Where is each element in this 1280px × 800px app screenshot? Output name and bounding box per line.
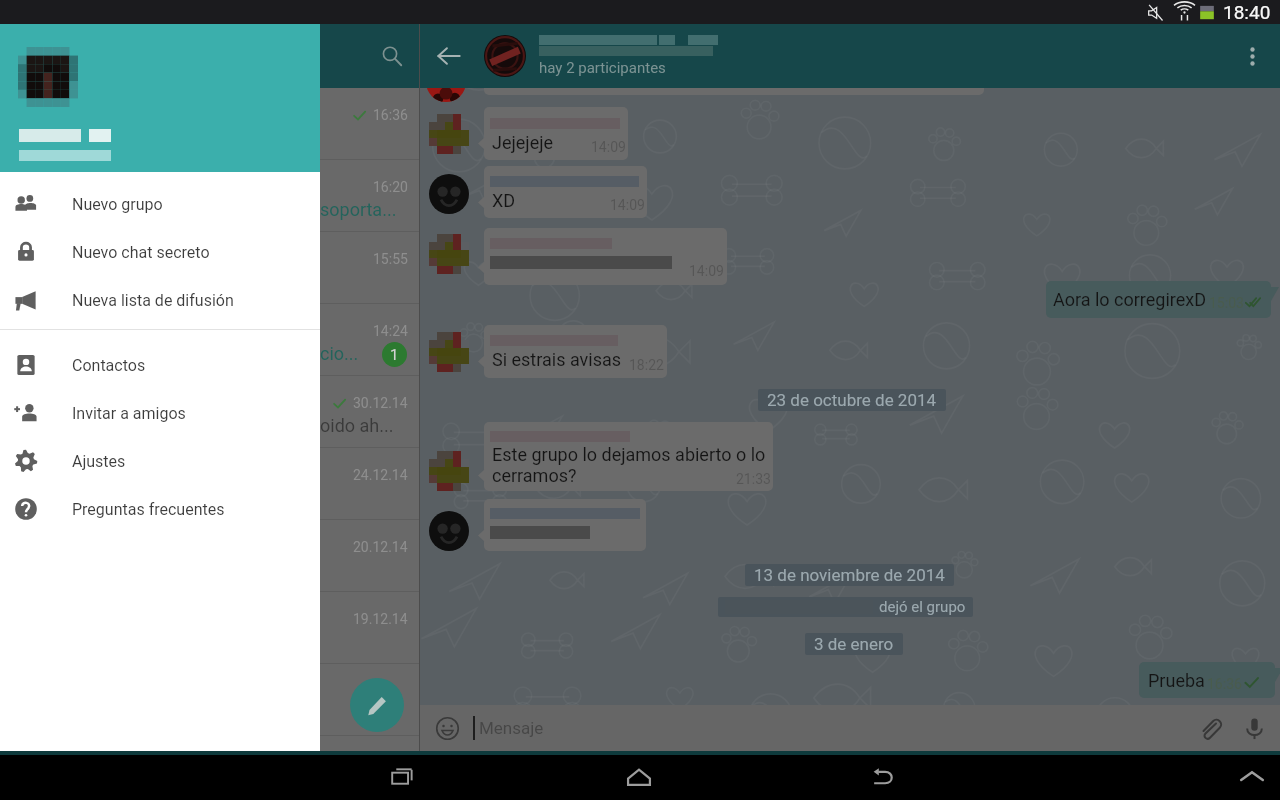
staticText: 18:40 bbox=[1223, 1, 1271, 23]
button[interactable]: Emoji bbox=[427, 708, 467, 748]
staticText: 20.12.14 bbox=[353, 539, 408, 555]
button[interactable]: 16:36 bbox=[0, 88, 420, 160]
button[interactable]: Record voice message bbox=[1232, 706, 1276, 750]
staticText: Ajustes bbox=[72, 452, 126, 471]
staticText: 13 de noviembre de 2014 bbox=[754, 565, 945, 585]
staticText: Contactos bbox=[72, 356, 146, 375]
staticText: 15:55 bbox=[373, 251, 408, 267]
staticText: 1 bbox=[390, 346, 399, 364]
staticText: Nueva lista de difusión bbox=[72, 291, 234, 310]
button[interactable]: Expand notifications bbox=[1229, 754, 1274, 799]
staticText: Invitar a amigos bbox=[72, 404, 186, 423]
staticText: 23 de octubre de 2014 bbox=[767, 390, 937, 410]
button[interactable]: Nuevo grupo bbox=[0, 180, 320, 228]
button[interactable]: Ajustes bbox=[0, 437, 320, 485]
staticText: 16:36 bbox=[1207, 676, 1242, 692]
staticText: 14:09 bbox=[610, 197, 645, 213]
staticText: Este grupo lo dejamos abierto o lo cerra… bbox=[492, 444, 766, 486]
staticText: soporta... bbox=[320, 199, 397, 220]
staticText: 30.12.14 bbox=[353, 395, 408, 411]
button[interactable]: Contactos bbox=[0, 341, 320, 389]
staticText: 21:33 bbox=[736, 471, 771, 487]
button[interactable]: Invitar a amigos bbox=[0, 389, 320, 437]
button[interactable]: More options bbox=[1230, 34, 1274, 78]
button[interactable]: Nueva lista de difusión bbox=[0, 276, 320, 324]
button[interactable]: Home bbox=[616, 754, 661, 799]
button[interactable]: Nuevo chat secreto bbox=[0, 228, 320, 276]
button[interactable]: Preguntas frecuentes bbox=[0, 485, 320, 533]
staticText: dejó el grupo bbox=[879, 598, 966, 616]
staticText: Prueba bbox=[1148, 670, 1205, 691]
staticText: Aora lo corregirexD bbox=[1053, 289, 1206, 310]
staticText: Preguntas frecuentes bbox=[72, 500, 225, 519]
staticText: cio... bbox=[320, 343, 359, 364]
staticText: 24.12.14 bbox=[353, 467, 408, 483]
button[interactable]: Back bbox=[860, 754, 905, 799]
button[interactable] bbox=[0, 664, 420, 736]
staticText: Mensaje bbox=[479, 718, 544, 738]
staticText: 14:24 bbox=[373, 323, 408, 339]
staticText: Nuevo grupo bbox=[72, 195, 163, 214]
button[interactable]: 14:24 bbox=[0, 304, 420, 376]
staticText: Jejejeje bbox=[492, 132, 554, 153]
button[interactable]: Attach file bbox=[1188, 706, 1232, 750]
staticText: 14:09 bbox=[591, 139, 626, 155]
staticText: 19.12.14 bbox=[353, 611, 408, 627]
staticText: 16:20 bbox=[373, 179, 408, 195]
button[interactable]: New chat bbox=[350, 678, 404, 732]
button[interactable]: Back bbox=[425, 32, 473, 80]
staticText: 15:03 bbox=[1209, 295, 1244, 311]
button[interactable]: 24.12.14 bbox=[0, 448, 420, 520]
staticText: hay 2 participantes bbox=[539, 59, 666, 77]
staticText: 14:09 bbox=[689, 263, 724, 279]
staticText: XD bbox=[492, 190, 516, 211]
staticText: 3 de enero bbox=[814, 634, 894, 654]
button[interactable]: 20.12.14 bbox=[0, 520, 420, 592]
button[interactable]: 16:20 bbox=[0, 160, 420, 232]
staticText: 16:36 bbox=[373, 107, 408, 123]
button[interactable]: Recent apps bbox=[380, 754, 425, 799]
staticText: oido ah... bbox=[320, 415, 394, 436]
button[interactable]: 30.12.14 bbox=[0, 376, 420, 448]
button[interactable]: 19.12.14 bbox=[0, 592, 420, 664]
staticText: Si estrais avisas bbox=[492, 349, 622, 370]
staticText: Nuevo chat secreto bbox=[72, 243, 210, 262]
staticText: 18:22 bbox=[629, 357, 664, 373]
button[interactable]: 15:55 bbox=[0, 232, 420, 304]
button[interactable]: Search bbox=[368, 32, 416, 80]
